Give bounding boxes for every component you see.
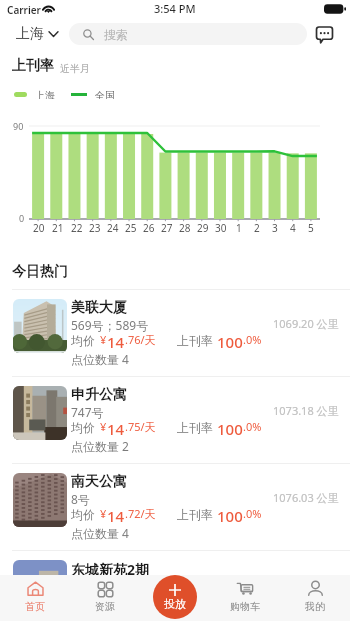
staticText: 1 (236, 221, 242, 235)
staticText: 100 (217, 332, 243, 349)
button[interactable]: 上海 (16, 23, 58, 44)
staticText: .75/天 (125, 419, 156, 434)
staticText: 首页 (25, 600, 45, 613)
staticText: 投放 (164, 597, 186, 611)
staticText: 今日热门 (12, 263, 68, 281)
staticText: 近半月 (60, 62, 90, 75)
button[interactable]: 东城新苑2期 (0, 550, 350, 621)
staticText: 南天公寓 (71, 473, 127, 490)
button[interactable]: 投放 (153, 575, 197, 619)
staticText: .0% (243, 332, 262, 347)
staticText: 2 (254, 221, 260, 235)
staticText: 美联大厦 (71, 299, 127, 316)
staticText: 全国 (95, 89, 115, 99)
staticText: ¥ (100, 506, 107, 521)
staticText: 1069.20 公里 (273, 316, 339, 331)
staticText: 均价 (71, 420, 95, 435)
staticText: ¥ (100, 593, 107, 608)
staticText: 0 (19, 212, 25, 224)
staticText: 均价 (71, 333, 95, 348)
staticText: 3:54 PM (154, 1, 196, 16)
button[interactable]: 南天公寓 (0, 463, 350, 550)
button[interactable]: 首页 (0, 575, 70, 621)
staticText: 东城新苑2期 (71, 560, 150, 577)
staticText: 4 (290, 221, 296, 235)
button[interactable]: 资源 (70, 575, 140, 621)
staticText: 14 (107, 506, 125, 523)
staticText: 20 (33, 221, 45, 235)
staticText: ¥ (100, 419, 107, 434)
staticText: 搜索 (104, 27, 128, 42)
staticText: 26 (143, 221, 155, 235)
button[interactable]: 我的 (280, 575, 350, 621)
staticText: 上海 (35, 89, 55, 99)
staticText: 5 (308, 221, 314, 235)
staticText: 点位数量 4 (71, 351, 129, 367)
staticText: .0% (243, 419, 262, 434)
staticText: .0% (243, 593, 262, 608)
staticText: 点位数量 4 (71, 525, 129, 541)
staticText: 25 (125, 221, 137, 235)
staticText: Carrier (7, 3, 41, 17)
staticText: 上刊率 (12, 57, 54, 75)
staticText: 100 (217, 506, 243, 523)
staticText: 上刊率 (177, 507, 213, 522)
staticText: .76/天 (125, 332, 156, 347)
button[interactable]: 搜索 (69, 23, 307, 45)
staticText: 3 (272, 221, 278, 235)
staticText: 24 (107, 221, 119, 235)
button[interactable]: 消息 (313, 23, 335, 45)
staticText: 资源 (95, 600, 115, 613)
staticText: 我的 (305, 600, 325, 613)
staticText: 点位数量 2 (71, 438, 129, 454)
staticText: 8号 (71, 491, 90, 507)
staticText: 上刊率 (177, 333, 213, 348)
staticText: 14 (107, 419, 125, 436)
staticText: 100 (217, 419, 243, 436)
staticText: 均价 (71, 507, 95, 522)
staticText: 100 (217, 593, 243, 610)
staticText: 上海 (16, 25, 44, 43)
staticText: .72/天 (125, 506, 156, 521)
staticText: 90 (13, 120, 24, 132)
staticText: 30 (215, 221, 227, 235)
staticText: 14 (107, 332, 125, 349)
staticText: 747号 (71, 404, 104, 420)
staticText: 申升公寓 (71, 386, 127, 403)
staticText: 23 (89, 221, 101, 235)
staticText: 上刊率 (177, 594, 213, 609)
staticText: 1073.18 公里 (273, 403, 339, 418)
staticText: 28 (179, 221, 191, 235)
staticText: 上刊率 (177, 420, 213, 435)
staticText: .0% (243, 506, 262, 521)
button[interactable]: 申升公寓 (0, 376, 350, 463)
staticText: .70/天 (125, 593, 156, 608)
staticText: 27 (161, 221, 173, 235)
staticText: 29 (197, 221, 209, 235)
staticText: 21 (52, 221, 64, 235)
staticText: 1080.00 公里 (273, 577, 339, 592)
staticText: 14 (107, 593, 125, 610)
staticText: 1076.03 公里 (273, 490, 339, 505)
staticText: ¥ (100, 332, 107, 347)
staticText: 购物车 (230, 600, 260, 613)
button[interactable]: 美联大厦 (0, 289, 350, 376)
staticText: 22 (71, 221, 83, 235)
button[interactable]: 购物车 (210, 575, 280, 621)
staticText: 569号；589号 (71, 317, 149, 333)
